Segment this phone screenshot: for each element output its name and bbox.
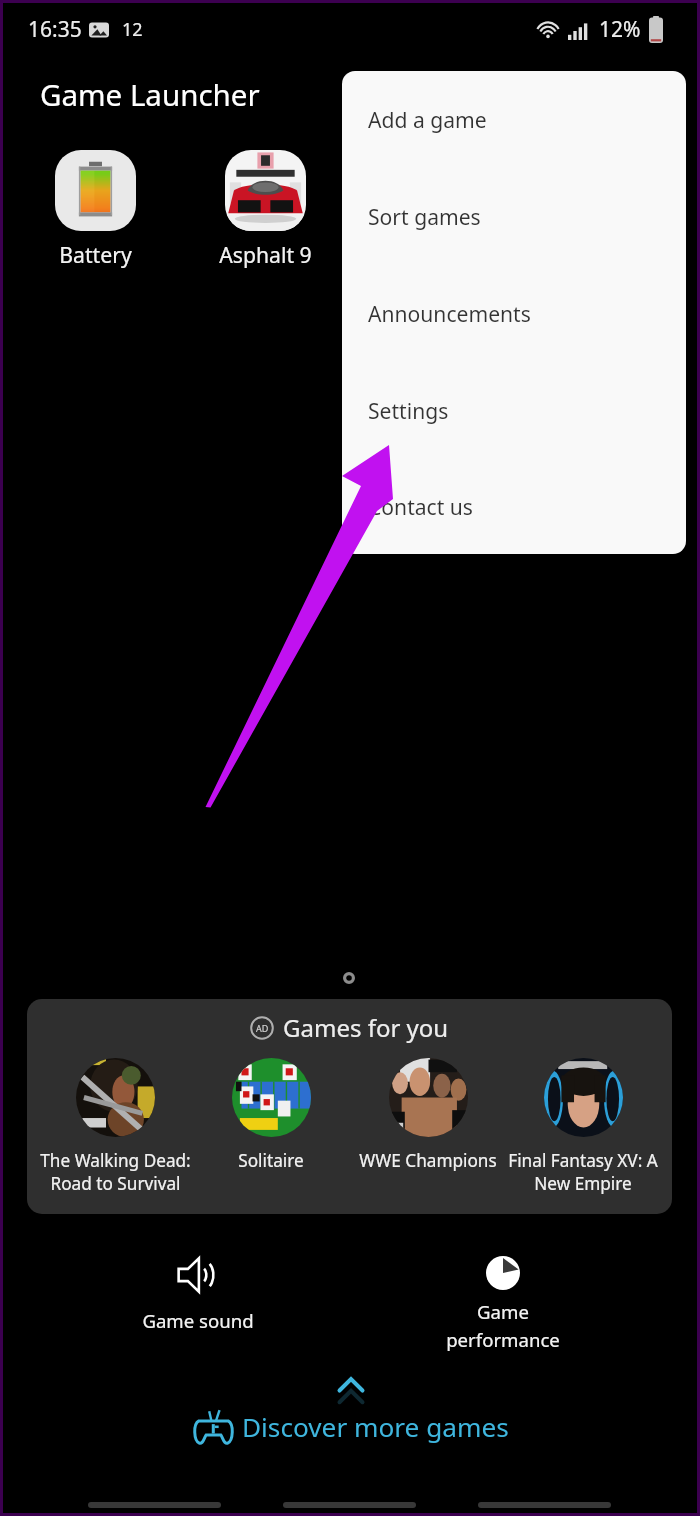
staticText: 12 xyxy=(122,17,143,42)
staticText: AD xyxy=(256,1022,269,1034)
staticText: Discover more games xyxy=(242,1409,509,1445)
button[interactable]: Solitaire xyxy=(181,1058,361,1172)
button[interactable]: The Walking Dead: Road to Survival xyxy=(27,1058,205,1195)
button[interactable]: Contact us xyxy=(342,459,686,554)
button[interactable]: Settings xyxy=(342,362,686,459)
staticText: Asphalt 9 xyxy=(219,240,312,269)
staticText: Solitaire xyxy=(238,1149,304,1172)
staticText: Announcements xyxy=(368,299,531,328)
button[interactable]: AD xyxy=(27,999,672,1214)
button[interactable]: Discover more games xyxy=(192,1377,509,1445)
button[interactable]: Battery xyxy=(17,150,173,269)
button[interactable]: Asphalt 9 xyxy=(187,150,343,269)
button[interactable]: Back xyxy=(478,1502,611,1508)
button[interactable]: Recents xyxy=(88,1502,221,1508)
button[interactable]: Game sound xyxy=(123,1256,273,1333)
button[interactable]: WWE Champions xyxy=(338,1058,518,1172)
button[interactable]: Game performance xyxy=(428,1256,578,1352)
staticText: The Walking Dead: Road to Survival xyxy=(40,1149,191,1195)
staticText: Settings xyxy=(368,396,449,425)
button[interactable]: Final Fantasy XV: A New Empire xyxy=(493,1058,672,1195)
staticText: Battery xyxy=(59,240,132,269)
staticText: WWE Champions xyxy=(359,1149,497,1172)
button[interactable]: Add a game xyxy=(342,71,686,168)
staticText: Sort games xyxy=(368,202,481,231)
staticText: Final Fantasy XV: A New Empire xyxy=(508,1149,658,1195)
button[interactable]: Home xyxy=(283,1502,416,1508)
staticText: Game sound xyxy=(142,1308,254,1333)
staticText: Add a game xyxy=(368,105,487,134)
button[interactable]: Sort games xyxy=(342,168,686,265)
staticText: 12% xyxy=(599,15,641,44)
staticText: Game performance xyxy=(446,1299,560,1352)
staticText: Game Launcher xyxy=(40,74,260,114)
staticText: 16:35 xyxy=(28,15,82,44)
staticText: Games for you xyxy=(283,1011,449,1044)
button[interactable]: Announcements xyxy=(342,265,686,362)
staticText: Contact us xyxy=(368,492,473,521)
